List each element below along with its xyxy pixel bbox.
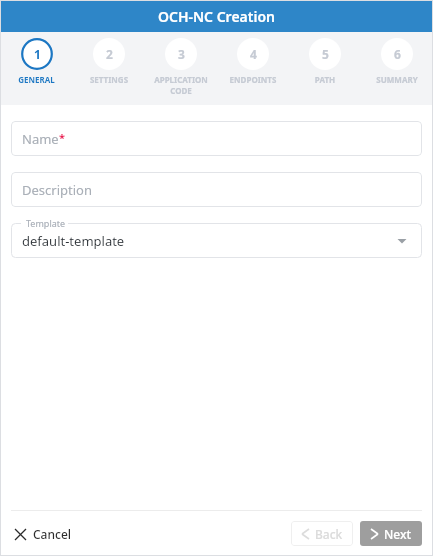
- staticText: 4: [250, 46, 257, 62]
- staticText: OCH-NC Creation: [158, 7, 276, 26]
- other: Next: [371, 529, 378, 539]
- staticText: GENERAL: [0, 74, 73, 85]
- button[interactable]: Next: [360, 521, 422, 546]
- staticText: Description: [22, 181, 92, 199]
- button[interactable]: 6: [361, 38, 433, 85]
- staticText: ENDPOINTS: [217, 74, 289, 85]
- staticText: Name: [22, 130, 59, 148]
- staticText: Back: [315, 526, 343, 542]
- staticText: *: [59, 130, 65, 145]
- staticText: Cancel: [33, 526, 72, 542]
- other: Back: [302, 529, 309, 539]
- staticText: SUMMARY: [361, 74, 433, 85]
- staticText: 6: [394, 46, 401, 62]
- button[interactable]: Description: [11, 172, 422, 207]
- button[interactable]: Name: [11, 121, 422, 156]
- button[interactable]: Cancel: [11, 521, 76, 547]
- staticText: SETTINGS: [73, 74, 145, 85]
- staticText: 3: [178, 46, 185, 62]
- staticText: PATH: [289, 74, 361, 85]
- button[interactable]: 2: [73, 38, 145, 85]
- staticText: Next: [384, 526, 412, 542]
- staticText: APPLICATION CODE: [145, 74, 217, 96]
- staticText: default-template: [22, 232, 125, 250]
- button[interactable]: Back: [291, 521, 353, 546]
- staticText: 5: [322, 46, 329, 62]
- button[interactable]: 4: [217, 38, 289, 85]
- button[interactable]: 5: [289, 38, 361, 85]
- button[interactable]: 3: [145, 38, 217, 96]
- button[interactable]: 1: [0, 38, 73, 85]
- button[interactable]: Template: [11, 223, 422, 258]
- staticText: 1: [34, 46, 41, 62]
- staticText: 2: [106, 46, 113, 62]
- staticText: Template: [26, 217, 66, 229]
